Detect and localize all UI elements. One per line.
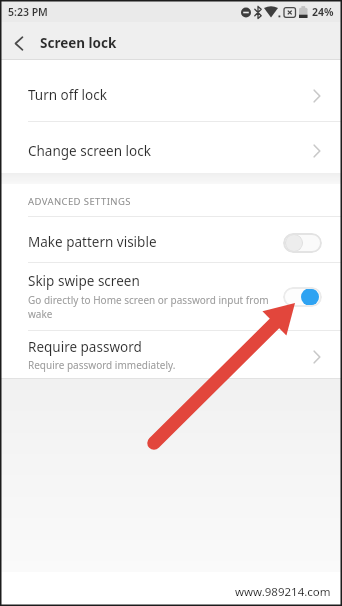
- staticText: www.989214.com: [235, 584, 331, 600]
- staticText: Require password: [28, 338, 142, 356]
- staticText: Screen lock: [40, 34, 117, 52]
- staticText: Make pattern visible: [28, 233, 157, 251]
- staticText: Turn off lock: [28, 86, 107, 104]
- staticText: Require password immediately.: [28, 358, 176, 372]
- staticText: Change screen lock: [28, 142, 151, 160]
- button[interactable]: Change screen lock: [0, 122, 342, 173]
- button[interactable]: [283, 233, 322, 253]
- staticText: ADVANCED SETTINGS: [28, 195, 131, 208]
- staticText: 5:23 PM: [8, 5, 48, 19]
- button[interactable]: Turn off lock: [0, 60, 342, 121]
- staticText: 24%: [312, 5, 334, 19]
- staticText: Go directly to Home screen or password i…: [28, 293, 282, 321]
- button[interactable]: Require password: [0, 331, 342, 378]
- button[interactable]: Make pattern visible: [0, 217, 342, 262]
- button[interactable]: [283, 287, 322, 307]
- button[interactable]: [6, 30, 32, 56]
- button[interactable]: Skip swipe screen: [0, 263, 342, 330]
- staticText: Skip swipe screen: [28, 272, 140, 290]
